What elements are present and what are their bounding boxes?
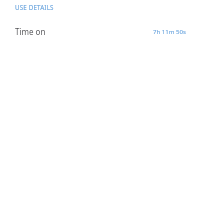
staticText: 7h 11m 50s: [153, 27, 186, 35]
button[interactable]: USE DETAILS: [0, 2, 200, 13]
button[interactable]: Time on: [0, 26, 200, 37]
staticText: USE DETAILS: [15, 3, 54, 12]
staticText: Time on: [15, 26, 46, 37]
